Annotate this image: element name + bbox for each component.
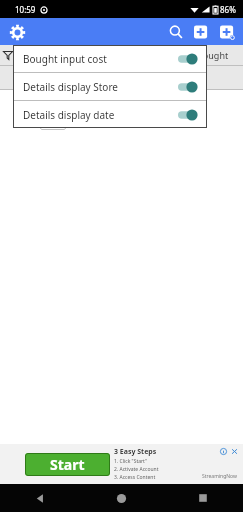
staticText: StreamingNow <box>202 473 237 480</box>
button[interactable]: Back <box>0 484 81 512</box>
button[interactable]: Add <box>191 21 213 43</box>
button[interactable]: Close ad <box>230 447 238 455</box>
button[interactable]: Add with options <box>217 21 239 43</box>
button[interactable]: Settings <box>7 22 27 42</box>
staticText: 10:59 <box>15 4 36 15</box>
staticText: Start <box>50 455 85 474</box>
button[interactable]: Bought input cost <box>13 45 207 72</box>
staticText: 3 Easy Steps <box>114 447 157 457</box>
staticText: Store: <box>74 99 94 109</box>
staticText: Bought <box>197 49 229 61</box>
button[interactable]: Date: <box>40 116 66 130</box>
button[interactable]: Cost: <box>40 97 65 111</box>
staticText: 1. Click "Start" <box>114 458 148 465</box>
button[interactable]: Recent apps <box>162 484 243 512</box>
staticText: Date: <box>44 118 62 128</box>
button[interactable]: Search <box>165 21 187 43</box>
button[interactable]: Details display Store <box>13 73 207 100</box>
button[interactable]: Filter <box>2 49 14 61</box>
staticText: Details display Store <box>23 80 178 94</box>
staticText: 86% <box>220 4 236 15</box>
staticText: Cost: <box>44 99 61 109</box>
staticText: 2. Activate Account <box>114 466 159 473</box>
button[interactable]: Start <box>0 444 243 484</box>
button[interactable]: Ad info <box>219 447 227 455</box>
staticText: Bought input cost <box>23 52 178 66</box>
button[interactable]: Toggle <box>178 52 198 66</box>
button[interactable]: Store: <box>70 97 98 111</box>
button[interactable]: Start <box>25 453 110 476</box>
button[interactable]: Home <box>81 484 162 512</box>
button[interactable]: Toggle <box>178 80 198 94</box>
button[interactable]: Details display date <box>13 101 207 128</box>
button[interactable]: Bought checkbox <box>0 90 243 130</box>
button[interactable]: Toggle <box>178 108 198 122</box>
button[interactable]: Bought checkbox <box>17 92 30 105</box>
staticText: 3. Access Content <box>114 474 156 481</box>
staticText: Details display date <box>23 108 178 122</box>
